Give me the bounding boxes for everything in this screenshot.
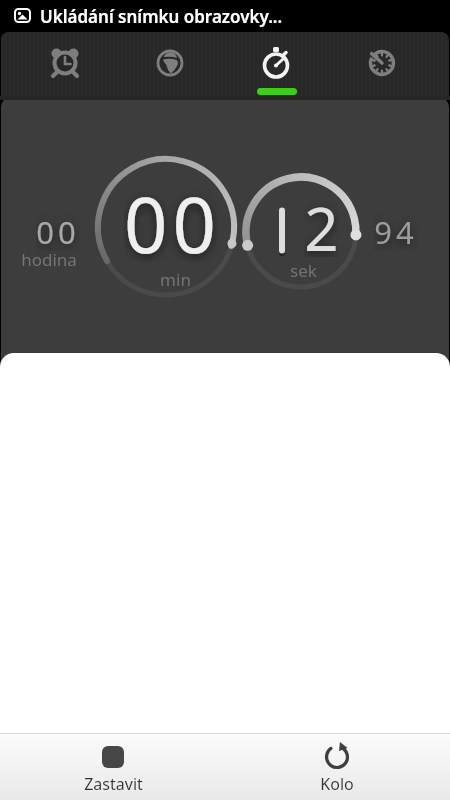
staticText: 94 — [374, 211, 418, 251]
staticText: Zastavit — [84, 773, 143, 795]
staticText: Ukládání snímku obrazovky... — [40, 5, 283, 28]
staticText: 00 — [124, 172, 221, 262]
staticText: sek — [290, 259, 317, 282]
staticText: 2 — [304, 187, 339, 257]
staticText: min — [160, 268, 191, 291]
staticText: Kolo — [320, 773, 354, 795]
staticText: hodina — [21, 248, 77, 271]
staticText: 00 — [36, 211, 80, 251]
